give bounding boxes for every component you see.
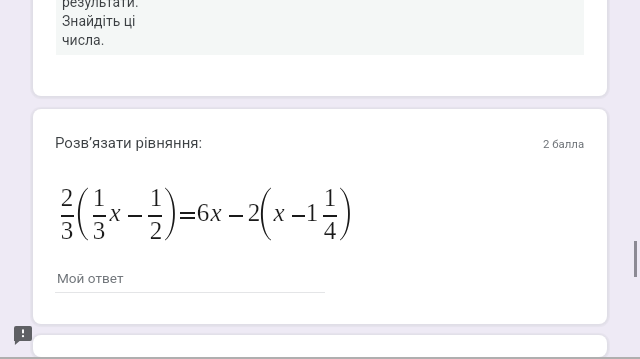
- staticText: 2: [242, 199, 266, 227]
- staticText: 6: [191, 199, 215, 227]
- staticText: 1: [87, 184, 111, 212]
- staticText: результати.: [62, 0, 139, 10]
- button[interactable]: Error: [14, 326, 32, 345]
- staticText: x: [204, 199, 228, 227]
- staticText: 2 балла: [543, 137, 585, 150]
- staticText: 3: [55, 217, 79, 245]
- staticText: числа.: [62, 32, 105, 48]
- staticText: Мой ответ: [57, 270, 124, 286]
- staticText: 3: [87, 217, 111, 245]
- staticText: x: [103, 199, 127, 227]
- staticText: 2: [144, 217, 168, 245]
- staticText: 1: [318, 184, 342, 212]
- button[interactable]: [33, 109, 607, 324]
- staticText: x: [267, 199, 291, 227]
- staticText: 2: [55, 184, 79, 212]
- staticText: 1: [300, 199, 324, 227]
- staticText: Розв’язати рівняння:: [55, 134, 203, 152]
- staticText: Знайдіть ці: [62, 13, 136, 29]
- staticText: 4: [318, 217, 342, 245]
- staticText: 1: [144, 184, 168, 212]
